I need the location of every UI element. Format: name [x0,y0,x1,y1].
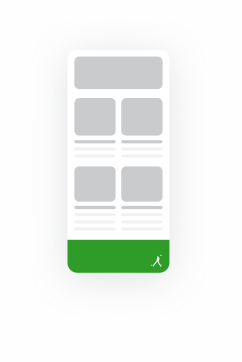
button[interactable]: Generate [67,240,169,273]
